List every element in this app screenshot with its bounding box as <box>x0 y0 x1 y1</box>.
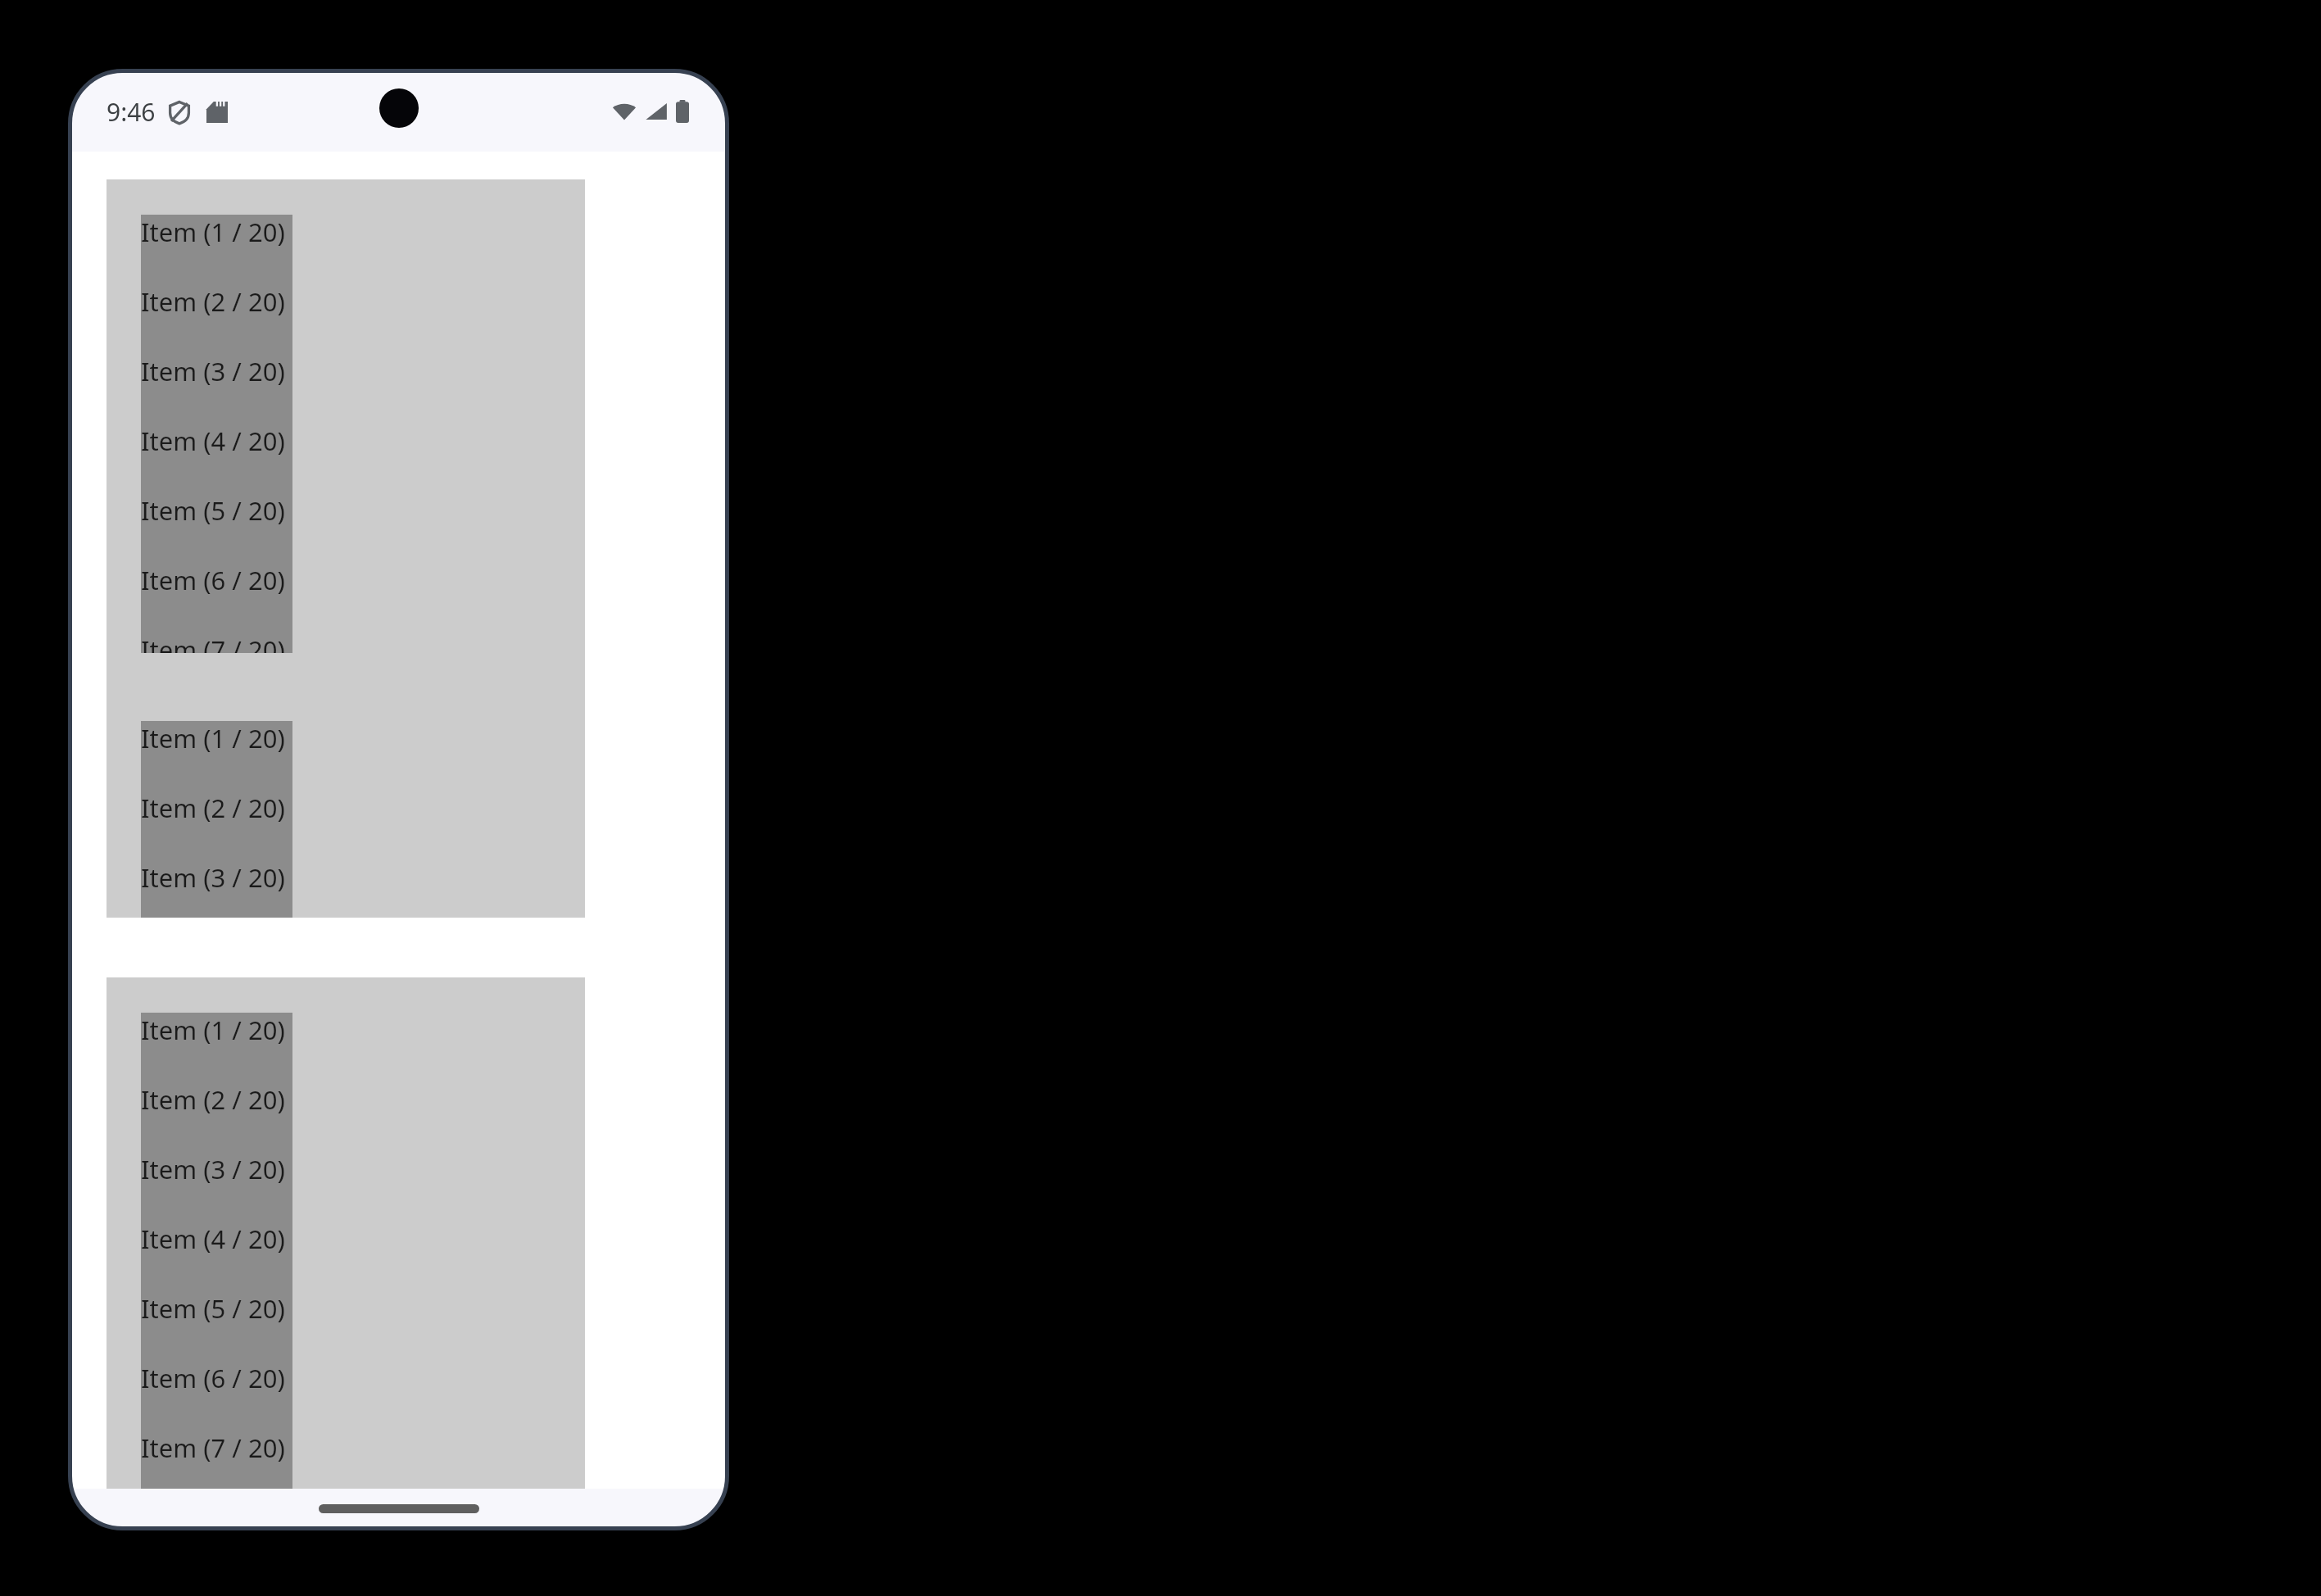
button[interactable]: Item (3 / 20) <box>141 354 292 424</box>
staticText: Item (6 / 20) <box>141 1361 285 1395</box>
button[interactable]: Item (1 / 20) <box>141 721 292 918</box>
staticText: Item (2 / 20) <box>141 791 285 825</box>
staticText: Item (5 / 20) <box>141 493 285 528</box>
staticText: Item (1 / 20) <box>141 721 285 755</box>
staticText: Item (2 / 20) <box>141 284 285 319</box>
button[interactable]: Item (7 / 20) <box>141 1431 292 1489</box>
button[interactable]: Item (1 / 20) <box>141 721 292 791</box>
button[interactable]: Item (5 / 20) <box>141 1291 292 1361</box>
staticText: Item (4 / 20) <box>141 424 285 458</box>
staticText: Item (3 / 20) <box>141 1152 285 1186</box>
button[interactable]: Item (5 / 20) <box>141 493 292 563</box>
staticText: Item (3 / 20) <box>141 354 285 388</box>
staticText: 9:46 <box>107 95 156 129</box>
button[interactable]: Item (4 / 20) <box>141 1222 292 1291</box>
staticText: Item (1 / 20) <box>141 1013 285 1047</box>
button[interactable]: Item (1 / 20) <box>141 1013 292 1082</box>
staticText: Item (1 / 20) <box>141 215 285 249</box>
button[interactable]: Item (6 / 20) <box>141 563 292 633</box>
button[interactable]: Item (1 / 20) <box>141 215 292 653</box>
staticText: Item (2 / 20) <box>141 1082 285 1117</box>
button[interactable]: Item (1 / 20) <box>141 215 292 284</box>
button[interactable]: Item (2 / 20) <box>141 1082 292 1152</box>
staticText: Item (7 / 20) <box>141 633 285 653</box>
button[interactable]: Item (1 / 20) <box>107 179 585 918</box>
staticText: Item (5 / 20) <box>141 1291 285 1326</box>
button[interactable]: Item (6 / 20) <box>141 1361 292 1431</box>
button[interactable]: Home gesture handle <box>319 1504 479 1513</box>
button[interactable]: Item (1 / 20) <box>107 977 585 1489</box>
staticText: Item (7 / 20) <box>141 1431 285 1465</box>
staticText: Item (3 / 20) <box>141 860 285 895</box>
staticText: Item (4 / 20) <box>141 1222 285 1256</box>
button[interactable]: Item (7 / 20) <box>141 633 292 653</box>
staticText: Item (6 / 20) <box>141 563 285 597</box>
button[interactable]: Item (3 / 20) <box>141 860 292 918</box>
button[interactable]: Item (2 / 20) <box>141 791 292 860</box>
button[interactable]: Item (4 / 20) <box>141 424 292 493</box>
button[interactable]: Item (3 / 20) <box>141 1152 292 1222</box>
button[interactable]: Item (1 / 20) <box>141 1013 292 1489</box>
button[interactable]: Item (2 / 20) <box>141 284 292 354</box>
